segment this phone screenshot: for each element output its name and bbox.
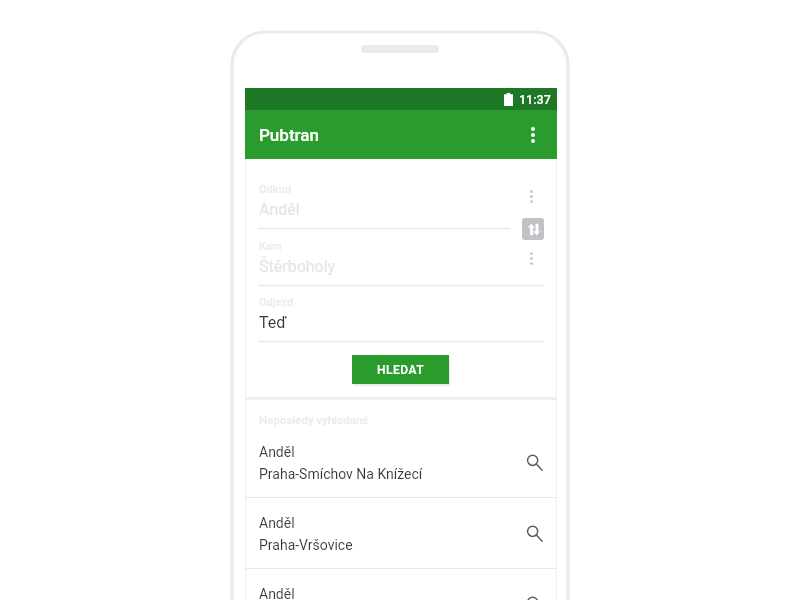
staticText: Naposledy vyhledané: [259, 413, 369, 426]
staticText: Praha-Vršovice: [259, 537, 353, 553]
staticText: HLEDAT: [377, 363, 425, 377]
button[interactable]: Swap stations: [522, 218, 544, 240]
staticText: Praha-Smíchov Na Knížecí: [259, 466, 423, 482]
button[interactable]: Field options: [519, 184, 543, 208]
button[interactable]: Field options: [519, 246, 543, 270]
staticText: Pubtran: [259, 125, 319, 145]
button[interactable]: Anděl: [245, 569, 557, 600]
staticText: Kam: [259, 240, 282, 253]
button[interactable]: HLEDAT: [352, 355, 449, 384]
button[interactable]: Anděl: [245, 498, 557, 568]
staticText: Anděl: [259, 515, 295, 531]
staticText: Teď: [259, 313, 287, 332]
staticText: Anděl: [259, 444, 295, 460]
staticText: Anděl: [259, 586, 295, 600]
staticText: Odkud: [259, 183, 291, 196]
staticText: Štěrboholy: [259, 257, 336, 276]
button[interactable]: Anděl: [245, 427, 557, 497]
staticText: Anděl: [259, 200, 300, 219]
staticText: 11:37: [519, 92, 551, 107]
staticText: Odjezd: [259, 296, 294, 309]
button[interactable]: More options: [513, 115, 553, 155]
